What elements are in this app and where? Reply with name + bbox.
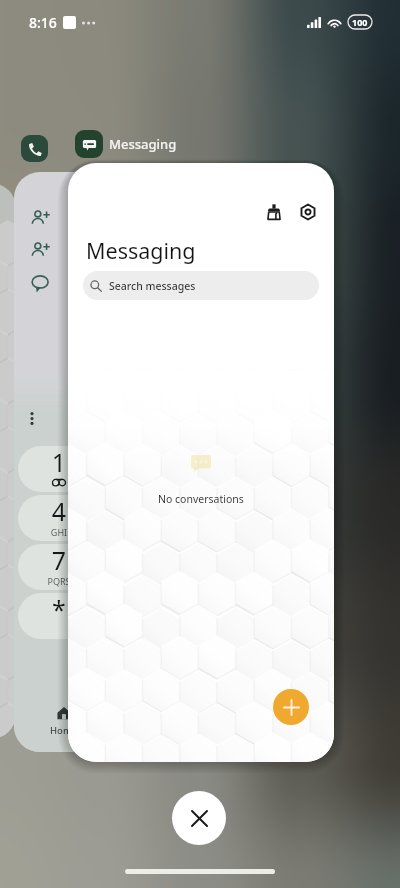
- staticText: 4: [44, 494, 74, 528]
- button[interactable]: More options: [14, 172, 124, 752]
- button[interactable]: Phone: [21, 135, 48, 162]
- button[interactable]: Clean up: [260, 198, 288, 226]
- button[interactable]: Close all: [172, 791, 226, 845]
- staticText: Home: [50, 724, 78, 737]
- staticText: Messaging: [109, 135, 177, 153]
- button[interactable]: New conversation: [273, 689, 309, 725]
- staticText: 7: [44, 543, 74, 577]
- staticText: No conversations: [158, 492, 244, 506]
- button[interactable]: Settings: [294, 198, 322, 226]
- staticText: 1: [44, 445, 74, 479]
- staticText: *: [44, 592, 74, 626]
- staticText: GHI: [39, 526, 79, 538]
- staticText: PQRS: [39, 575, 79, 587]
- staticText: Messaging: [86, 236, 196, 265]
- button[interactable]: Search messages: [83, 271, 319, 300]
- staticText: 100: [352, 16, 368, 28]
- button[interactable]: More options: [25, 408, 39, 428]
- staticText: Search messages: [109, 279, 196, 293]
- staticText: 8:16: [29, 13, 57, 32]
- button[interactable]: Messaging: [75, 130, 177, 158]
